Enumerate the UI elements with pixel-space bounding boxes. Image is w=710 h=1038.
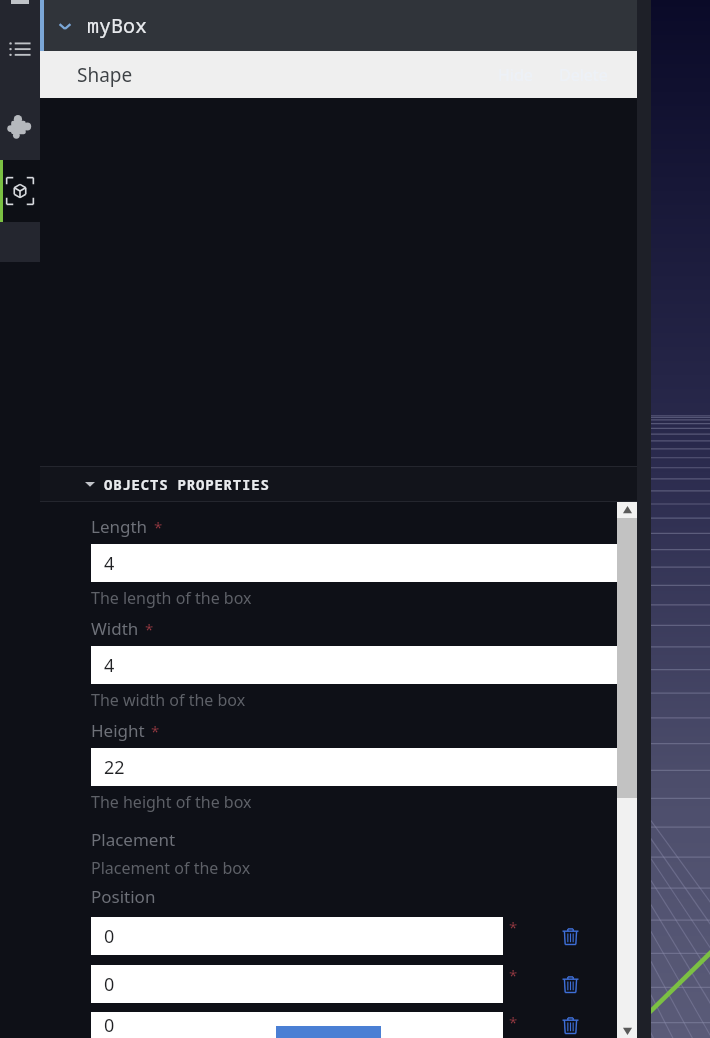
staticText: 4 xyxy=(104,551,115,576)
button[interactable]: List xyxy=(0,24,40,76)
staticText: * xyxy=(154,517,163,537)
staticText: Width xyxy=(91,617,139,640)
button[interactable]: 22 xyxy=(91,748,617,786)
staticText: 0 xyxy=(104,924,115,949)
button[interactable]: myBox xyxy=(40,0,637,51)
button[interactable]: Shape xyxy=(40,51,637,98)
staticText: Placement of the box xyxy=(91,857,251,879)
staticText: OBJECTS PROPERTIES xyxy=(104,475,270,494)
button[interactable]: 4 xyxy=(91,646,617,684)
staticText: myBox xyxy=(87,12,147,39)
staticText: The height of the box xyxy=(91,791,252,813)
button[interactable]: 4 xyxy=(91,544,617,582)
button[interactable]: Objects xyxy=(0,160,40,222)
staticText: The width of the box xyxy=(91,689,246,711)
staticText: Placement xyxy=(91,828,176,851)
staticText: * xyxy=(509,1012,518,1032)
button[interactable]: 0 xyxy=(91,917,503,955)
button[interactable]: OBJECTS PROPERTIES xyxy=(40,467,637,501)
button[interactable]: Delete xyxy=(550,916,590,956)
staticText: Height xyxy=(91,719,145,742)
staticText: 0 xyxy=(104,1013,115,1038)
staticText: 4 xyxy=(104,653,115,678)
staticText: 22 xyxy=(104,755,125,780)
button[interactable]: Delete xyxy=(550,1012,590,1038)
staticText: 0 xyxy=(104,972,115,997)
staticText: * xyxy=(509,965,518,985)
staticText: Shape xyxy=(77,62,133,88)
staticText: The length of the box xyxy=(91,587,252,609)
staticText: * xyxy=(509,917,518,937)
staticText: Length xyxy=(91,515,148,538)
button[interactable]: 0 xyxy=(91,965,503,1003)
staticText: * xyxy=(151,721,160,741)
staticText: * xyxy=(145,619,154,639)
button[interactable]: 0 xyxy=(91,1012,503,1038)
button[interactable]: Plugins xyxy=(0,100,40,152)
button[interactable]: Delete xyxy=(550,964,590,1004)
staticText: Position xyxy=(91,885,156,908)
